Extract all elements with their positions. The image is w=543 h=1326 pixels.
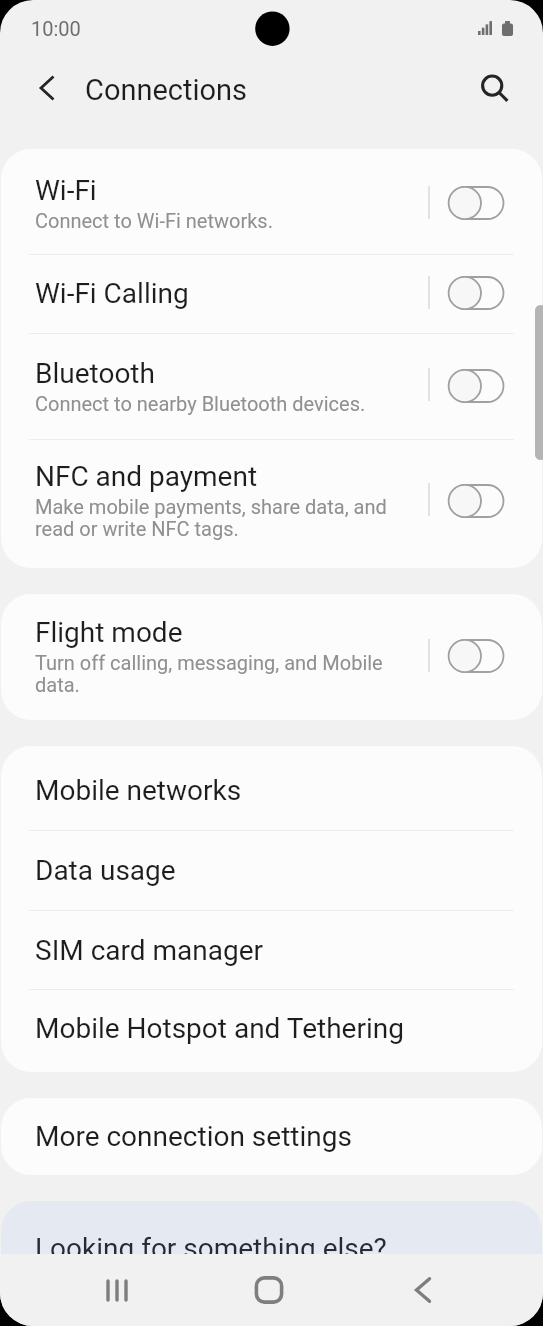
- button[interactable]: Wi-Fi: [1, 154, 542, 254]
- button[interactable]: Wi-Fi Calling: [1, 255, 542, 333]
- staticText: SIM card manager: [35, 934, 264, 967]
- staticText: Flight mode: [35, 616, 183, 649]
- staticText: Wi-Fi: [35, 174, 97, 207]
- button[interactable]: Mobile networks: [1, 751, 542, 830]
- button[interactable]: Back: [378, 1254, 468, 1326]
- button[interactable]: NFC and payment: [1, 440, 542, 563]
- staticText: Connections: [85, 73, 248, 107]
- staticText: Mobile Hotspot and Tethering: [35, 1012, 404, 1045]
- button[interactable]: Data usage: [1, 831, 542, 910]
- button[interactable]: Bluetooth: [1, 334, 542, 439]
- button[interactable]: Home: [224, 1254, 314, 1326]
- staticText: Connect to Wi-Fi networks.: [35, 209, 273, 232]
- staticText: Mobile networks: [35, 774, 242, 807]
- button[interactable]: Flight mode: [1, 599, 542, 715]
- button[interactable]: Looking for something else?: [1, 1201, 542, 1321]
- staticText: Make mobile payments, share data, and re…: [35, 495, 393, 541]
- button[interactable]: SIM card manager: [1, 911, 542, 989]
- staticText: NFC and payment: [35, 460, 258, 493]
- staticText: Turn off calling, messaging, and Mobile …: [35, 651, 393, 697]
- button[interactable]: Back: [27, 66, 71, 110]
- staticText: Looking for something else?: [35, 1232, 387, 1265]
- button[interactable]: Search: [473, 66, 517, 110]
- staticText: Bluetooth: [35, 357, 155, 390]
- button[interactable]: Recents: [72, 1254, 162, 1326]
- staticText: Data usage: [35, 854, 176, 887]
- button[interactable]: More connection settings: [1, 1098, 542, 1175]
- button[interactable]: Mobile Hotspot and Tethering: [1, 990, 542, 1067]
- staticText: Wi-Fi Calling: [35, 277, 189, 310]
- staticText: 10:00: [31, 17, 81, 40]
- staticText: More connection settings: [35, 1120, 352, 1153]
- staticText: Connect to nearby Bluetooth devices.: [35, 392, 366, 415]
